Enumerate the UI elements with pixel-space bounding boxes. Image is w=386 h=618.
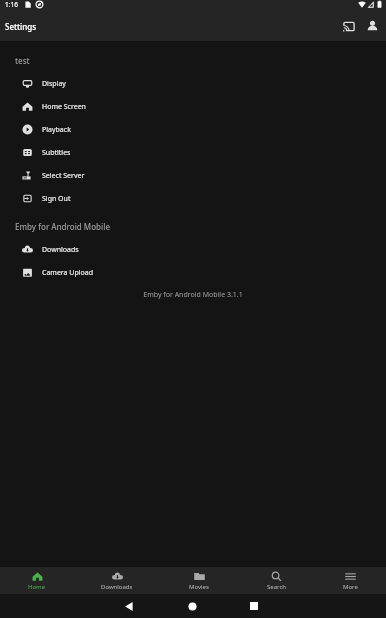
button[interactable]: Search bbox=[238, 567, 314, 594]
staticText: Playback bbox=[42, 125, 71, 135]
button[interactable]: More bbox=[314, 567, 386, 594]
button[interactable]: Playback bbox=[0, 118, 386, 141]
button[interactable]: Movies bbox=[160, 567, 238, 594]
button[interactable]: Back bbox=[114, 594, 144, 618]
staticText: 1:16 bbox=[5, 0, 18, 9]
button[interactable]: Downloads bbox=[74, 567, 160, 594]
staticText: Downloads bbox=[101, 583, 133, 591]
staticText: Settings bbox=[5, 21, 37, 32]
staticText: Home Screen bbox=[42, 102, 86, 112]
button[interactable]: Subtitles bbox=[0, 141, 386, 164]
button[interactable]: Downloads bbox=[0, 238, 386, 261]
staticText: Display bbox=[42, 79, 66, 89]
staticText: test bbox=[15, 55, 30, 66]
staticText: Sign Out bbox=[42, 194, 71, 204]
button[interactable]: Display bbox=[0, 72, 386, 95]
button[interactable]: Home bbox=[177, 594, 207, 618]
staticText: Camera Upload bbox=[42, 268, 94, 278]
staticText: Emby for Android Mobile bbox=[15, 221, 110, 232]
button[interactable]: Account bbox=[363, 14, 381, 38]
button[interactable]: Recents bbox=[239, 594, 269, 618]
staticText: Downloads bbox=[42, 245, 79, 255]
button[interactable]: Home Screen bbox=[0, 95, 386, 118]
staticText: Subtitles bbox=[42, 148, 71, 158]
button[interactable]: Sign Out bbox=[0, 187, 386, 210]
button[interactable]: Camera Upload bbox=[0, 261, 386, 284]
button[interactable]: Cast bbox=[340, 14, 358, 38]
staticText: Select Server bbox=[42, 171, 85, 181]
button[interactable]: Home bbox=[0, 567, 74, 594]
button[interactable]: Select Server bbox=[0, 164, 386, 187]
staticText: Search bbox=[267, 583, 286, 591]
staticText: Home bbox=[28, 583, 46, 591]
staticText: Movies bbox=[189, 583, 209, 591]
staticText: Emby for Android Mobile 3.1.1 bbox=[0, 290, 386, 300]
staticText: More bbox=[343, 583, 358, 591]
